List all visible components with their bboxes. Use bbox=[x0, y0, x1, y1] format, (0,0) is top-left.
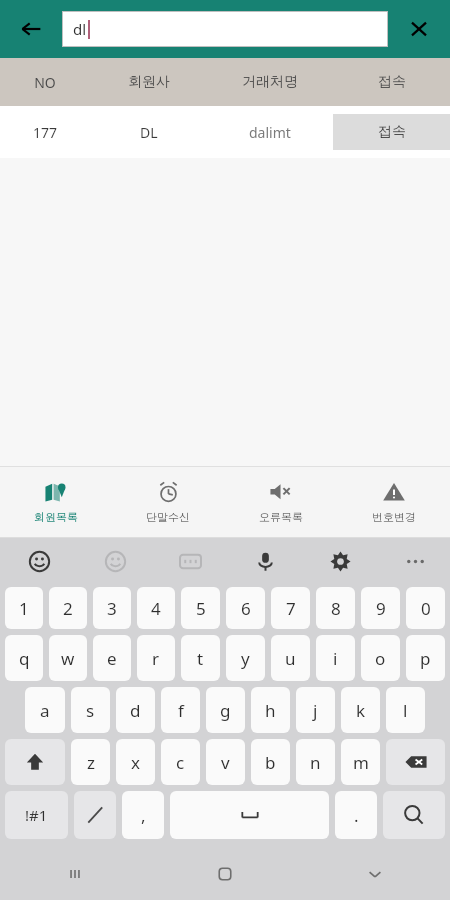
button[interactable]: l bbox=[386, 687, 425, 733]
button[interactable]: j bbox=[296, 687, 335, 733]
staticText: i bbox=[333, 647, 338, 670]
button[interactable]: 4 bbox=[137, 587, 175, 629]
button[interactable]: 오류목록 bbox=[224, 467, 337, 537]
button[interactable]: 9 bbox=[361, 587, 400, 629]
staticText: dl bbox=[73, 19, 87, 39]
staticText: g bbox=[220, 699, 231, 722]
staticText: l bbox=[403, 699, 408, 722]
button[interactable]: Back bbox=[0, 0, 62, 58]
button[interactable]: b bbox=[251, 739, 290, 785]
staticText: 0 bbox=[421, 597, 431, 620]
button[interactable]: a bbox=[25, 687, 65, 733]
staticText: h bbox=[265, 699, 276, 722]
button[interactable]: y bbox=[226, 635, 265, 681]
button[interactable]: 접속 bbox=[333, 114, 450, 150]
button[interactable]: h bbox=[251, 687, 290, 733]
button[interactable]: i bbox=[316, 635, 355, 681]
button[interactable]: Settings bbox=[323, 544, 357, 578]
button[interactable]: q bbox=[5, 635, 43, 681]
button[interactable]: 5 bbox=[181, 587, 220, 629]
staticText: 회원사 bbox=[128, 73, 170, 91]
staticText: . bbox=[354, 804, 359, 827]
button[interactable]: u bbox=[271, 635, 310, 681]
staticText: 9 bbox=[376, 597, 386, 620]
button[interactable]: x bbox=[116, 739, 155, 785]
button[interactable]: r bbox=[137, 635, 175, 681]
button[interactable]: 8 bbox=[316, 587, 355, 629]
button[interactable]: Backspace bbox=[386, 739, 445, 785]
button[interactable]: 3 bbox=[93, 587, 131, 629]
button[interactable]: p bbox=[406, 635, 445, 681]
button[interactable]: 0 bbox=[406, 587, 445, 629]
button[interactable]: More options bbox=[398, 544, 432, 578]
button[interactable]: Shift bbox=[5, 739, 65, 785]
button[interactable]: t bbox=[181, 635, 220, 681]
staticText: 3 bbox=[107, 597, 117, 620]
button[interactable]: 단말수신 bbox=[112, 467, 224, 537]
staticText: dalimt bbox=[249, 123, 291, 142]
staticText: 177 bbox=[33, 123, 58, 142]
staticText: j bbox=[313, 699, 318, 722]
button[interactable]: dl bbox=[62, 11, 388, 47]
staticText: a bbox=[40, 699, 50, 722]
staticText: 7 bbox=[286, 597, 296, 620]
button[interactable]: Stickers bbox=[98, 544, 132, 578]
staticText: r bbox=[152, 647, 160, 670]
button[interactable]: Home bbox=[150, 848, 300, 900]
button[interactable]: 7 bbox=[271, 587, 310, 629]
button[interactable]: 6 bbox=[226, 587, 265, 629]
button[interactable]: . bbox=[335, 791, 377, 839]
staticText: 4 bbox=[151, 597, 161, 620]
button[interactable]: e bbox=[93, 635, 131, 681]
button[interactable]: Space bbox=[170, 791, 329, 839]
button[interactable]: s bbox=[71, 687, 110, 733]
button[interactable]: Search bbox=[383, 791, 445, 839]
staticText: 6 bbox=[241, 597, 251, 620]
staticText: 단말수신 bbox=[146, 510, 190, 524]
button[interactable]: f bbox=[161, 687, 200, 733]
button[interactable]: 2 bbox=[49, 587, 87, 629]
staticText: b bbox=[265, 751, 276, 774]
button[interactable]: 번호변경 bbox=[337, 467, 450, 537]
button[interactable]: Voice input bbox=[248, 544, 282, 578]
staticText: , bbox=[141, 804, 146, 827]
staticText: u bbox=[285, 647, 296, 670]
button[interactable]: z bbox=[71, 739, 110, 785]
button[interactable]: n bbox=[296, 739, 335, 785]
staticText: v bbox=[221, 751, 230, 774]
staticText: s bbox=[86, 699, 95, 722]
staticText: 접속 bbox=[378, 123, 406, 141]
button[interactable]: v bbox=[206, 739, 245, 785]
staticText: c bbox=[176, 751, 185, 774]
staticText: 접속 bbox=[378, 73, 406, 91]
staticText: 1 bbox=[19, 597, 29, 620]
button[interactable]: 회원목록 bbox=[0, 467, 112, 537]
button[interactable]: 1 bbox=[5, 587, 43, 629]
staticText: 거래처명 bbox=[242, 73, 298, 91]
button[interactable]: c bbox=[161, 739, 200, 785]
staticText: d bbox=[130, 699, 141, 722]
button[interactable]: o bbox=[361, 635, 400, 681]
staticText: DL bbox=[140, 123, 158, 142]
staticText: x bbox=[131, 751, 140, 774]
staticText: y bbox=[241, 647, 250, 670]
button[interactable]: w bbox=[49, 635, 87, 681]
staticText: 번호변경 bbox=[372, 510, 416, 524]
staticText: n bbox=[310, 751, 321, 774]
button[interactable]: Clear bbox=[388, 0, 450, 58]
button[interactable]: m bbox=[341, 739, 380, 785]
button[interactable]: Hide keyboard bbox=[300, 848, 450, 900]
button[interactable]: Emoji bbox=[22, 544, 56, 578]
button[interactable]: Language bbox=[74, 791, 116, 839]
staticText: 8 bbox=[331, 597, 341, 620]
button[interactable]: g bbox=[206, 687, 245, 733]
staticText: w bbox=[61, 647, 75, 670]
button[interactable]: 177 bbox=[0, 106, 450, 158]
staticText: p bbox=[420, 647, 431, 670]
button[interactable]: d bbox=[116, 687, 155, 733]
button[interactable]: GIF bbox=[173, 544, 207, 578]
button[interactable]: , bbox=[122, 791, 164, 839]
button[interactable]: k bbox=[341, 687, 380, 733]
button[interactable]: Recents bbox=[0, 848, 150, 900]
button[interactable]: !#1 bbox=[5, 791, 68, 839]
